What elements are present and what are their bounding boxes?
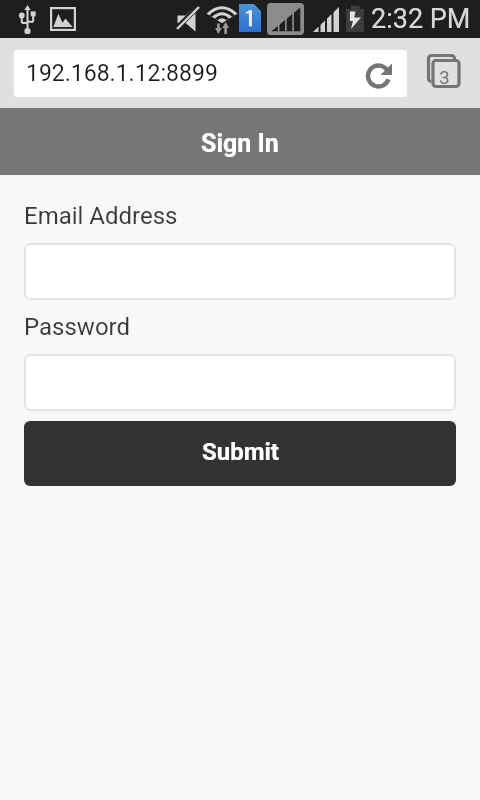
button[interactable]: Tabs <box>426 54 462 92</box>
button[interactable] <box>24 354 456 411</box>
staticText: Sign In <box>201 129 279 158</box>
staticText: Email Address <box>24 202 178 230</box>
staticText: Password <box>24 313 131 341</box>
staticText: 192.168.1.12:8899 <box>26 60 218 87</box>
staticText: Submit <box>202 438 279 466</box>
button[interactable] <box>24 243 456 300</box>
button[interactable]: Submit <box>24 421 456 486</box>
button[interactable]: 192.168.1.12:8899 <box>14 50 407 97</box>
staticText: 2:32 PM <box>371 3 471 35</box>
button[interactable]: Reload <box>365 58 397 90</box>
staticText: 3 <box>439 66 450 88</box>
